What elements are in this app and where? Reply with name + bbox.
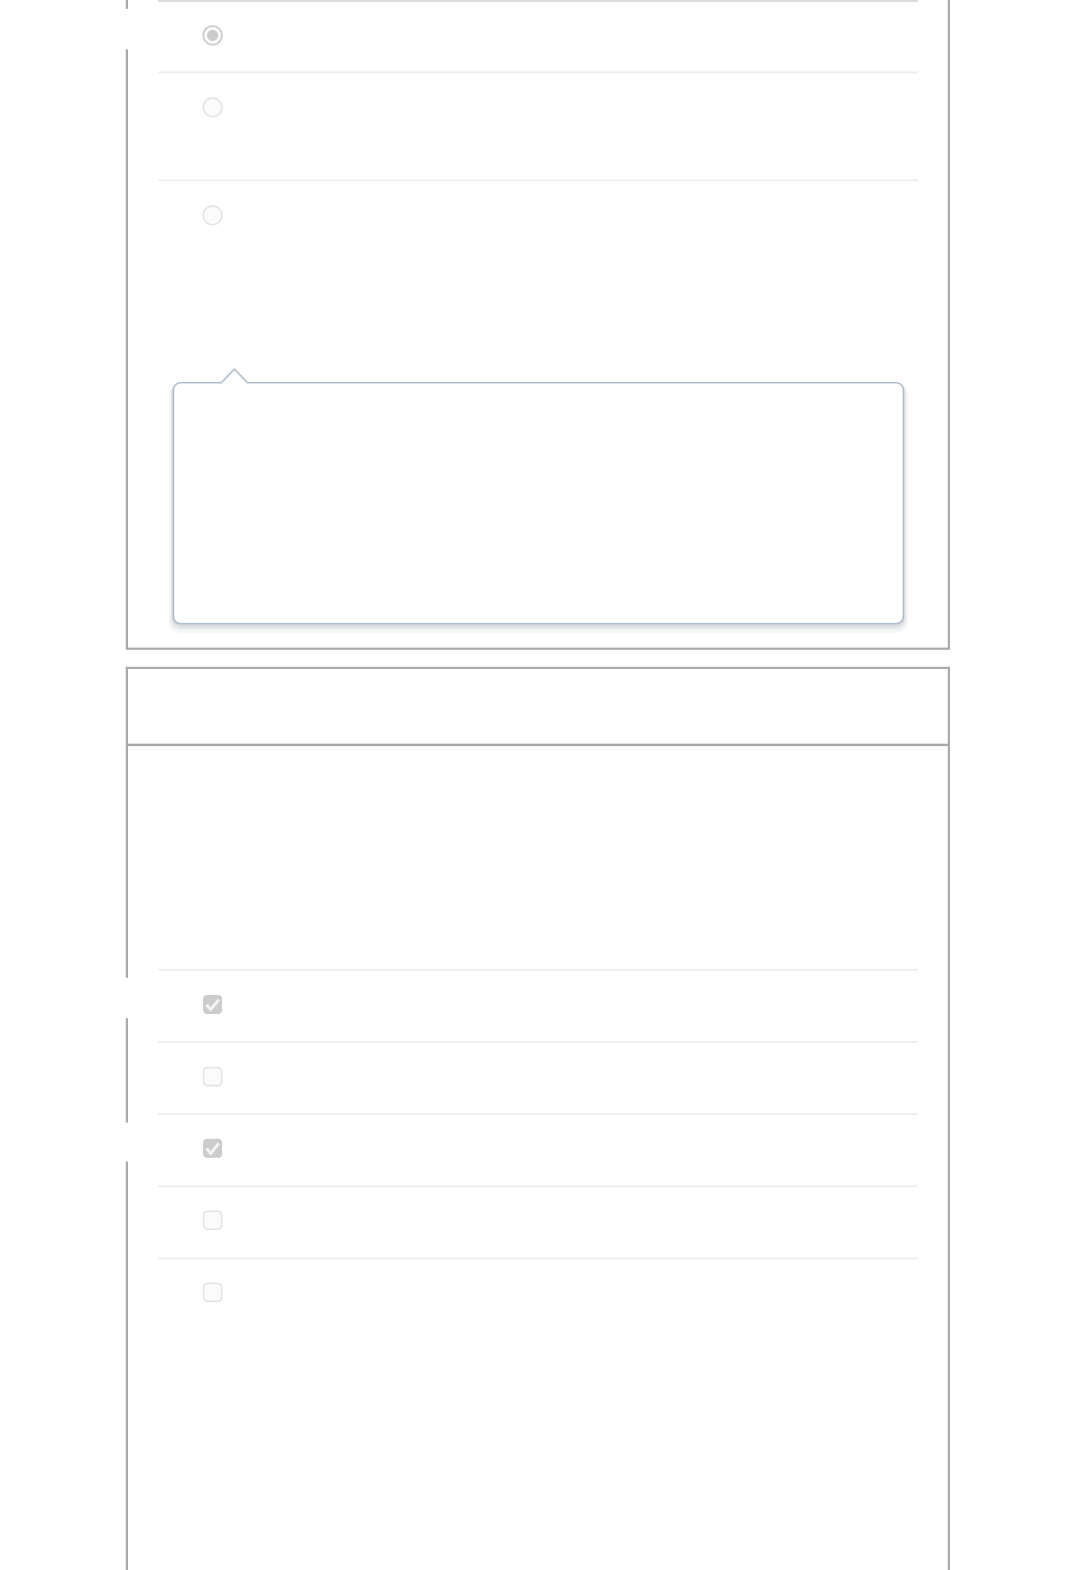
button[interactable]: Checked item (158, 1115, 918, 1185)
button[interactable]: Selected option (158, 2, 918, 71)
button[interactable]: Checked item (158, 971, 918, 1041)
